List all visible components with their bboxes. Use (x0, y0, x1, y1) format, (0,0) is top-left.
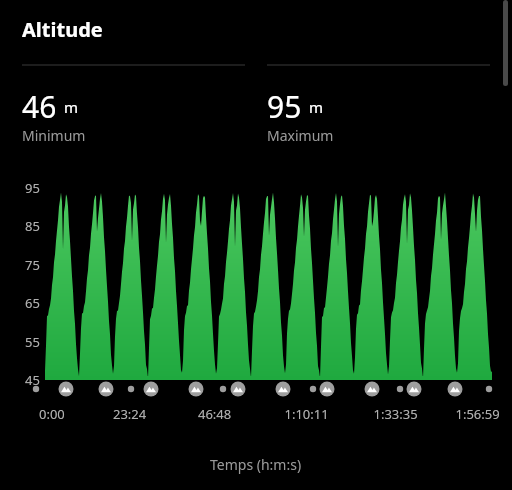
other: Altitude chart (0, 0, 512, 490)
button[interactable]: Altitude chart (0, 0, 512, 490)
